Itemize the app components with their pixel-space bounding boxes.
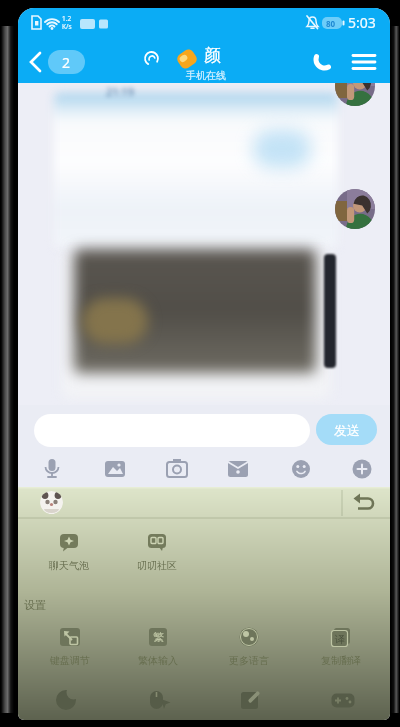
button[interactable]: 叨叨社区 bbox=[134, 532, 180, 572]
button[interactable]: 繁 bbox=[135, 626, 181, 667]
staticText: 手机在线 bbox=[186, 69, 226, 82]
staticText: 叨叨社区 bbox=[137, 559, 177, 572]
button[interactable] bbox=[239, 688, 263, 712]
staticText: 颜 bbox=[204, 45, 221, 66]
button[interactable] bbox=[101, 455, 129, 485]
button[interactable] bbox=[148, 688, 172, 712]
button[interactable] bbox=[55, 688, 79, 712]
button[interactable] bbox=[310, 48, 344, 78]
staticText: 繁体输入 bbox=[138, 654, 178, 667]
button[interactable] bbox=[348, 46, 382, 80]
staticText: 更多语言 bbox=[229, 654, 269, 667]
button[interactable] bbox=[335, 189, 375, 229]
button[interactable]: 聊天气泡 bbox=[46, 532, 92, 572]
staticText: 发送 bbox=[334, 422, 360, 438]
button[interactable] bbox=[40, 491, 63, 514]
button[interactable] bbox=[287, 455, 315, 485]
button[interactable]: 更多语言 bbox=[226, 626, 272, 667]
staticText: 21:19 bbox=[106, 84, 135, 99]
staticText: 1.2 bbox=[62, 14, 72, 23]
button[interactable] bbox=[331, 688, 355, 712]
button[interactable] bbox=[335, 83, 375, 106]
staticText: 设置 bbox=[24, 598, 46, 612]
button[interactable]: 颜 bbox=[142, 44, 272, 86]
staticText: 80 bbox=[326, 18, 336, 29]
staticText: 5:03 bbox=[348, 13, 376, 32]
button[interactable]: 键盘调节 bbox=[47, 626, 93, 667]
button[interactable] bbox=[34, 414, 310, 447]
button[interactable] bbox=[224, 455, 252, 485]
button[interactable] bbox=[352, 491, 382, 515]
staticText: 复制翻译 bbox=[321, 654, 361, 667]
button[interactable] bbox=[163, 455, 191, 485]
button[interactable] bbox=[38, 455, 66, 485]
staticText: 繁 bbox=[153, 630, 164, 644]
button[interactable] bbox=[348, 455, 376, 485]
button[interactable]: 2 bbox=[24, 50, 90, 80]
button[interactable]: 发送 bbox=[316, 414, 377, 445]
staticText: K/s bbox=[62, 22, 72, 31]
staticText: 2 bbox=[62, 53, 71, 72]
staticText: 聊天气泡 bbox=[49, 559, 89, 572]
staticText: 译 bbox=[335, 633, 345, 646]
button[interactable]: 译 bbox=[318, 626, 364, 667]
staticText: 键盘调节 bbox=[50, 654, 90, 667]
